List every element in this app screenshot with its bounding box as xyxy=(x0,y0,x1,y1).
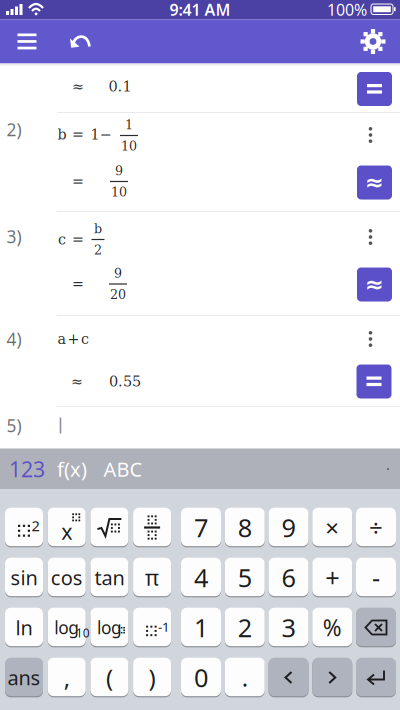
staticText: ans xyxy=(7,664,40,691)
button[interactable]: Approximate output xyxy=(357,165,392,199)
button[interactable]: Exact output xyxy=(357,72,392,106)
button[interactable]: 2 xyxy=(225,608,265,647)
staticText: 1 xyxy=(125,118,133,132)
button[interactable]: Return xyxy=(356,658,396,697)
button[interactable]: sin xyxy=(5,558,43,597)
button[interactable]: π xyxy=(133,558,171,597)
staticText: a xyxy=(57,331,66,347)
button[interactable]: % xyxy=(312,608,352,647)
button[interactable]: 7 xyxy=(181,508,221,547)
button[interactable]: Function keyboard xyxy=(54,449,90,489)
staticText: ) xyxy=(149,662,156,693)
button[interactable]: cos xyxy=(48,558,86,597)
staticText: 2 xyxy=(238,611,252,644)
button[interactable]: square xyxy=(5,508,43,547)
staticText: 10 xyxy=(111,185,127,199)
button[interactable]: + xyxy=(312,558,352,597)
button[interactable]: Menu xyxy=(5,19,49,63)
button[interactable]: 3 xyxy=(268,608,308,647)
staticText: 3 xyxy=(281,611,295,644)
button[interactable]: Exact output xyxy=(356,364,391,398)
staticText: ≈ xyxy=(365,170,384,195)
staticText: , xyxy=(64,662,70,693)
staticText: = xyxy=(72,276,84,292)
button[interactable]: 5 xyxy=(225,558,265,597)
staticText: log xyxy=(54,616,79,639)
button[interactable]: Undo xyxy=(58,19,102,63)
staticText: + xyxy=(325,561,339,594)
button[interactable]: ans xyxy=(5,658,43,697)
staticText: ≈ xyxy=(365,272,384,297)
staticText: ABC xyxy=(103,456,142,482)
staticText: 0 xyxy=(194,661,208,694)
button[interactable]: ) xyxy=(133,658,171,697)
staticText: + xyxy=(67,331,79,347)
staticText: b xyxy=(94,222,102,236)
staticText: ≈ xyxy=(72,78,84,95)
button[interactable]: Delete xyxy=(356,608,396,647)
staticText: π xyxy=(145,563,159,592)
button[interactable]: Move left xyxy=(268,658,308,697)
button[interactable]: , xyxy=(48,658,86,697)
button[interactable]: ÷ xyxy=(356,508,396,547)
button[interactable]: Row options xyxy=(360,329,380,349)
button[interactable]: log xyxy=(90,608,128,647)
staticText: cos xyxy=(51,564,83,591)
staticText: 1 xyxy=(194,611,208,644)
staticText: log xyxy=(97,616,122,639)
button[interactable]: 1 xyxy=(181,608,221,647)
staticText: -1 xyxy=(158,618,170,635)
button[interactable]: square root xyxy=(90,508,128,547)
staticText: b xyxy=(57,126,66,143)
staticText: ≈ xyxy=(71,373,83,390)
staticText: ÷ xyxy=(369,512,383,543)
button[interactable]: Numeric keyboard xyxy=(5,449,49,489)
staticText: = xyxy=(72,126,84,143)
button[interactable]: 8 xyxy=(225,508,265,547)
staticText: 9 xyxy=(115,164,123,178)
staticText: 100% xyxy=(327,0,367,20)
button[interactable]: Letter keyboard xyxy=(98,449,148,489)
staticText: − xyxy=(100,126,112,143)
staticText: ln xyxy=(15,614,32,641)
button[interactable]: fraction xyxy=(133,508,171,547)
staticText: 2 xyxy=(31,516,39,535)
staticText: 5) xyxy=(6,414,21,437)
button[interactable]: Move right xyxy=(312,658,352,697)
staticText: 1 xyxy=(90,126,99,143)
button[interactable]: inverse xyxy=(133,608,171,647)
button[interactable]: tan xyxy=(90,558,128,597)
staticText: 9:41 AM xyxy=(169,0,230,20)
staticText: 8 xyxy=(238,511,252,544)
button[interactable]: power xyxy=(48,508,86,547)
staticText: tan xyxy=(94,564,124,591)
button[interactable]: ( xyxy=(90,658,128,697)
staticText: x xyxy=(61,517,72,546)
staticText: 0.55 xyxy=(109,373,141,390)
button[interactable]: ln xyxy=(5,608,43,647)
button[interactable]: . xyxy=(225,658,265,697)
staticText: 20 xyxy=(110,287,126,302)
staticText: 2) xyxy=(6,118,21,141)
button[interactable]: Approximate output xyxy=(357,267,392,301)
staticText: 4 xyxy=(194,561,208,594)
button[interactable]: 6 xyxy=(268,558,308,597)
staticText: c xyxy=(81,331,89,347)
staticText: sin xyxy=(10,564,37,591)
staticText: 3) xyxy=(6,225,21,248)
button[interactable]: × xyxy=(312,508,352,547)
staticText: = xyxy=(72,231,84,248)
staticText: 7 xyxy=(194,511,208,544)
button[interactable]: 0 xyxy=(181,658,221,697)
button[interactable]: Settings xyxy=(351,19,395,63)
button[interactable]: Row options xyxy=(360,227,380,247)
button[interactable]: 4 xyxy=(181,558,221,597)
staticText: ( xyxy=(106,662,113,693)
button[interactable]: 9 xyxy=(268,508,308,547)
staticText: 123 xyxy=(9,455,45,483)
button[interactable]: - xyxy=(356,558,396,597)
button[interactable]: log base 10 xyxy=(48,608,86,647)
staticText: 5 xyxy=(238,561,252,594)
staticText: 10 xyxy=(76,625,90,641)
button[interactable]: Row options xyxy=(360,125,380,145)
